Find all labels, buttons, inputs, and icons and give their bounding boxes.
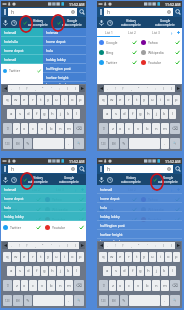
button[interactable]: More tabs — [168, 185, 175, 194]
button[interactable]: u — [53, 95, 60, 105]
button[interactable]: " — [135, 85, 143, 92]
button[interactable]: k — [161, 266, 168, 276]
button[interactable]: d — [121, 266, 128, 276]
button[interactable]: Shift — [3, 123, 12, 134]
button[interactable]: home depot — [1, 194, 86, 202]
button[interactable]: q — [99, 252, 107, 262]
button[interactable]: e — [117, 95, 124, 105]
button[interactable]: d — [25, 266, 32, 276]
button[interactable]: w — [12, 95, 20, 105]
button[interactable]: l — [169, 266, 176, 276]
button[interactable]: q — [3, 252, 11, 262]
button[interactable]: Shift — [99, 280, 108, 291]
button[interactable]: p — [173, 95, 180, 105]
button[interactable]: c — [29, 123, 37, 134]
button[interactable]: e — [117, 252, 124, 262]
button[interactable]: m — [65, 123, 73, 134]
button[interactable]: List 3 — [144, 28, 168, 37]
button[interactable]: List 2 — [120, 185, 144, 194]
button[interactable]: " — [135, 242, 143, 249]
button[interactable]: List 1 — [97, 28, 120, 37]
button[interactable]: d — [25, 109, 32, 119]
button[interactable]: t — [133, 252, 140, 262]
button[interactable]: c — [29, 280, 37, 291]
button[interactable]: a — [7, 266, 15, 276]
button[interactable]: ) — [167, 242, 175, 249]
button[interactable]: Backspace — [170, 280, 180, 291]
button[interactable]: 123 — [99, 295, 108, 306]
button[interactable]: z — [13, 280, 20, 291]
button[interactable]: hulu — [43, 46, 86, 54]
button[interactable]: s — [112, 266, 120, 276]
button[interactable]: . — [65, 295, 73, 306]
button[interactable]: Twitter — [97, 57, 139, 67]
button[interactable]: q — [3, 95, 11, 105]
button[interactable]: n — [152, 280, 160, 291]
button[interactable]: 123 — [3, 138, 12, 149]
button[interactable]: Search — [74, 295, 84, 306]
button[interactable]: hotmail — [1, 185, 86, 193]
button[interactable]: h — [104, 8, 173, 16]
button[interactable]: b — [47, 280, 55, 291]
button[interactable]: hulu — [1, 203, 86, 211]
button[interactable]: List 3 — [48, 185, 72, 194]
button[interactable]: ! — [15, 85, 23, 92]
button[interactable]: m — [65, 280, 73, 291]
button[interactable]: Twitter — [1, 214, 43, 224]
button[interactable]: happy wheels — [43, 82, 86, 84]
button[interactable]: Bing — [97, 204, 139, 214]
button[interactable]: l — [169, 109, 176, 119]
button[interactable]: z — [109, 123, 116, 134]
button[interactable]: ! — [111, 242, 119, 249]
button[interactable]: EN — [109, 295, 119, 306]
button[interactable]: , — [127, 242, 135, 249]
button[interactable]: g — [137, 266, 144, 276]
button[interactable]: i — [61, 252, 68, 262]
button[interactable]: EN — [13, 138, 23, 149]
button[interactable]: Voice search — [1, 174, 9, 185]
button[interactable]: Wikipedia — [43, 204, 86, 214]
button[interactable]: p — [77, 95, 84, 105]
button[interactable]: Google — [148, 17, 182, 28]
button[interactable]: Search — [77, 164, 86, 174]
button[interactable]: u — [53, 252, 60, 262]
button[interactable]: Search — [173, 164, 182, 174]
button[interactable]: r — [125, 252, 132, 262]
button[interactable]: x — [117, 280, 124, 291]
button[interactable]: q — [99, 95, 107, 105]
button[interactable]: happy wheels — [97, 239, 182, 241]
button[interactable]: d — [121, 109, 128, 119]
button[interactable]: Add list — [175, 185, 182, 194]
button[interactable]: t — [37, 95, 44, 105]
button[interactable]: : — [151, 85, 159, 92]
button[interactable]: : — [55, 85, 63, 92]
button[interactable]: . — [161, 295, 169, 306]
button[interactable]: : — [55, 242, 63, 249]
button[interactable]: i — [157, 252, 164, 262]
button[interactable]: g — [41, 109, 48, 119]
button[interactable]: y — [141, 95, 148, 105]
button[interactable]: Google — [52, 17, 86, 28]
button[interactable]: h — [49, 109, 56, 119]
button[interactable]: huffington post — [97, 221, 182, 229]
button[interactable]: Backspace — [74, 280, 84, 291]
button[interactable]: Emoji — [120, 138, 128, 149]
button[interactable]: Search — [77, 7, 86, 17]
button[interactable]: Next — [79, 85, 85, 92]
button[interactable]: List 1 — [1, 185, 24, 194]
button[interactable]: : — [151, 242, 159, 249]
button[interactable]: Emoji — [24, 138, 32, 149]
button[interactable]: n — [56, 280, 64, 291]
button[interactable]: j — [153, 266, 160, 276]
button[interactable]: e — [21, 95, 28, 105]
button[interactable]: Youtube — [43, 221, 86, 234]
button[interactable]: h — [145, 109, 152, 119]
button[interactable]: y — [45, 252, 52, 262]
button[interactable]: Next — [79, 242, 85, 249]
button[interactable]: l — [73, 109, 80, 119]
button[interactable]: ) — [167, 85, 175, 92]
button[interactable]: z — [109, 280, 116, 291]
button[interactable]: History — [114, 174, 148, 185]
button[interactable]: ? — [23, 85, 31, 92]
